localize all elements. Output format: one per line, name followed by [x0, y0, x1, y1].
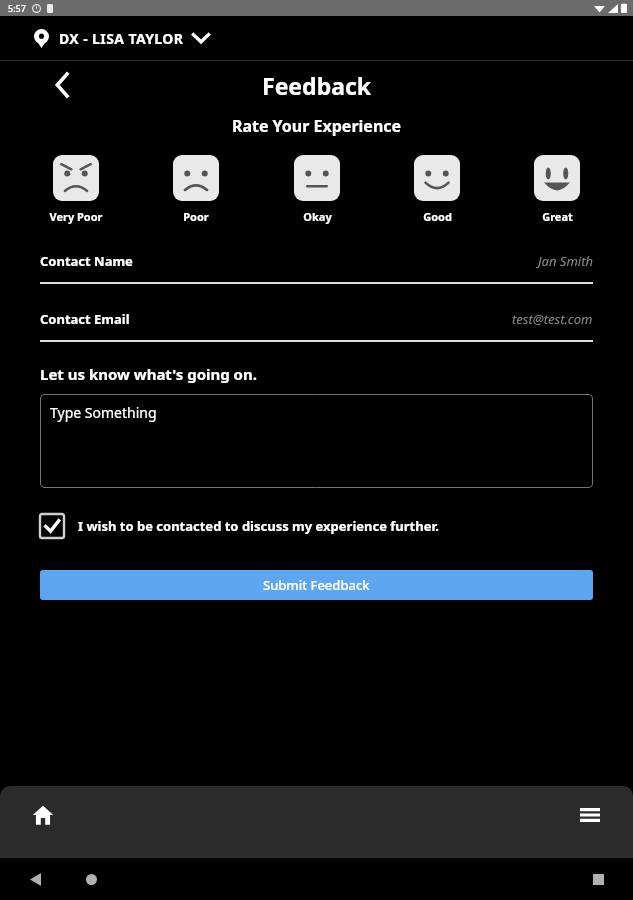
staticText: Contact Name	[40, 252, 133, 270]
button[interactable]: Okay	[281, 155, 353, 224]
staticText: Let us know what's going on.	[40, 364, 257, 384]
button[interactable]: Back	[44, 67, 80, 103]
button[interactable]: Submit Feedback	[40, 570, 593, 600]
staticText: Poor	[183, 209, 209, 224]
button[interactable]: Very Poor	[40, 155, 112, 224]
button[interactable]: Menu	[569, 794, 611, 836]
button[interactable]: Home	[22, 794, 64, 836]
staticText: Jan Smith	[538, 252, 593, 270]
staticText: Okay	[303, 209, 332, 224]
button[interactable]: DX - LISA TAYLOR	[0, 16, 633, 60]
button[interactable]: Contact Email	[0, 304, 633, 342]
staticText: Rate Your Experience	[0, 115, 633, 137]
button[interactable]: I wish to be contacted to discuss my exp…	[0, 512, 633, 540]
staticText: Type Something	[50, 403, 157, 422]
button[interactable]: Back	[22, 866, 48, 892]
button[interactable]: Recent apps	[585, 866, 611, 892]
staticText: DX - LISA TAYLOR	[59, 29, 184, 48]
staticText: I wish to be contacted to discuss my exp…	[78, 517, 439, 535]
staticText: Submit Feedback	[263, 576, 370, 594]
staticText: Feedback	[262, 70, 372, 101]
button[interactable]: Great	[521, 155, 593, 224]
staticText: Very Poor	[49, 209, 103, 224]
staticText: Good	[423, 209, 452, 224]
staticText: Great	[542, 209, 573, 224]
button[interactable]: Type Something	[40, 394, 593, 488]
staticText: Contact Email	[40, 310, 130, 328]
button[interactable]: Poor	[160, 155, 232, 224]
button[interactable]: Good	[401, 155, 473, 224]
button[interactable]: Contact Name	[0, 246, 633, 284]
staticText: 5:57	[8, 2, 26, 14]
staticText: test@test.com	[512, 310, 593, 328]
button[interactable]: Home	[78, 866, 104, 892]
